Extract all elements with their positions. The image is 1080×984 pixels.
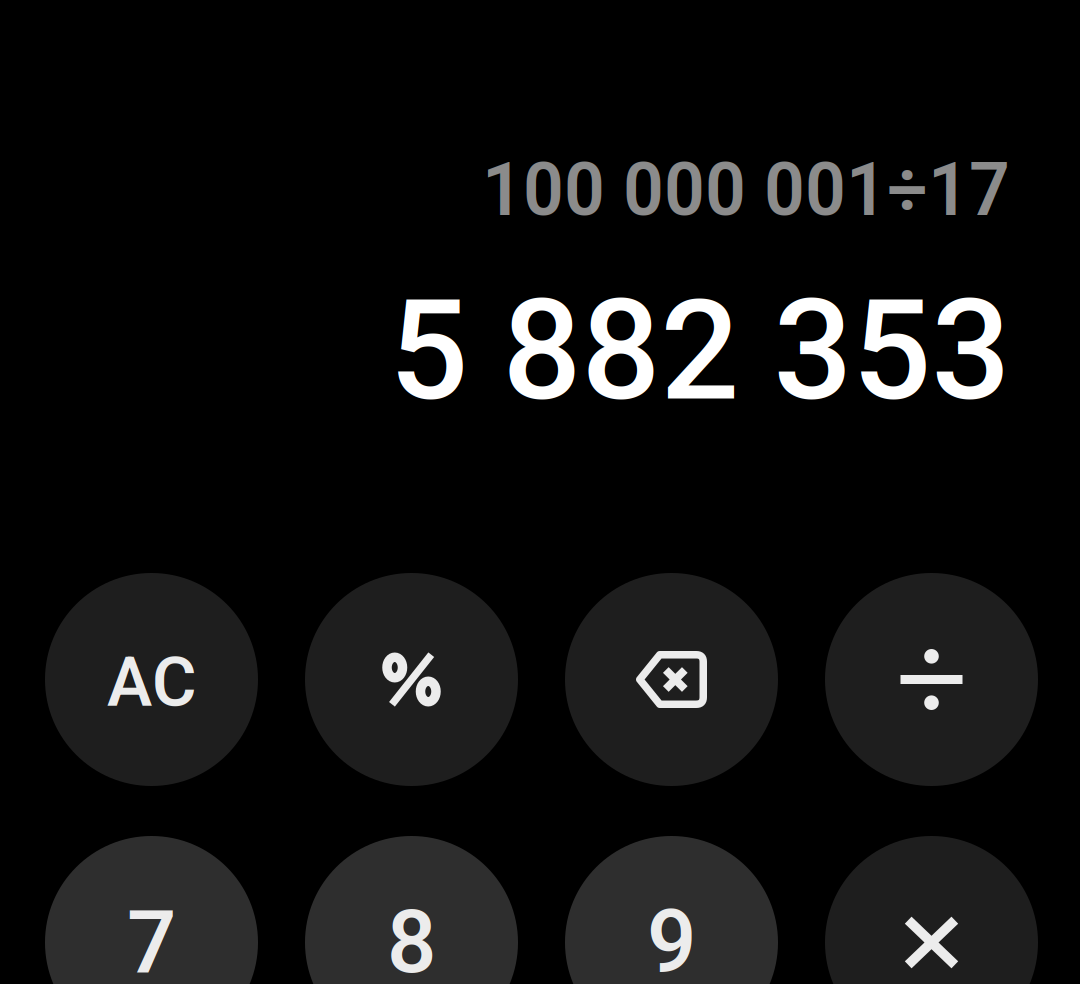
staticText: 8 [387, 892, 436, 984]
button[interactable]: 8 [305, 836, 518, 984]
staticText: 9 [647, 892, 696, 984]
button[interactable]: AC [45, 573, 258, 786]
button[interactable]: Divide [825, 573, 1038, 786]
button[interactable]: Backspace [565, 573, 778, 786]
staticText: 5 882 353 [389, 270, 1010, 432]
staticText: AC [107, 643, 196, 722]
button[interactable]: 9 [565, 836, 778, 984]
button[interactable]: Percent [305, 573, 518, 786]
staticText: 100 000 001÷17 [482, 147, 1010, 233]
button[interactable]: Multiply [825, 836, 1038, 984]
button[interactable]: 7 [45, 836, 258, 984]
staticText: 7 [127, 892, 176, 984]
